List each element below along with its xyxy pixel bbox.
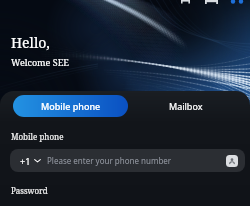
button[interactable]: Mailbox (128, 95, 244, 117)
staticText: Please enter your phone number (47, 155, 172, 166)
button[interactable]: Mobile phone (13, 95, 128, 117)
staticText: Welcome SEE (11, 56, 69, 68)
staticText: Mobile phone (11, 131, 64, 142)
staticText: +1 (20, 155, 31, 167)
staticText: Password (11, 185, 48, 196)
button[interactable]: +1 (10, 149, 41, 172)
staticText: Mobile phone (41, 100, 101, 112)
staticText: Hello, (11, 33, 50, 52)
staticText: Mailbox (169, 100, 203, 112)
button[interactable]: Choose from contacts (226, 155, 238, 167)
